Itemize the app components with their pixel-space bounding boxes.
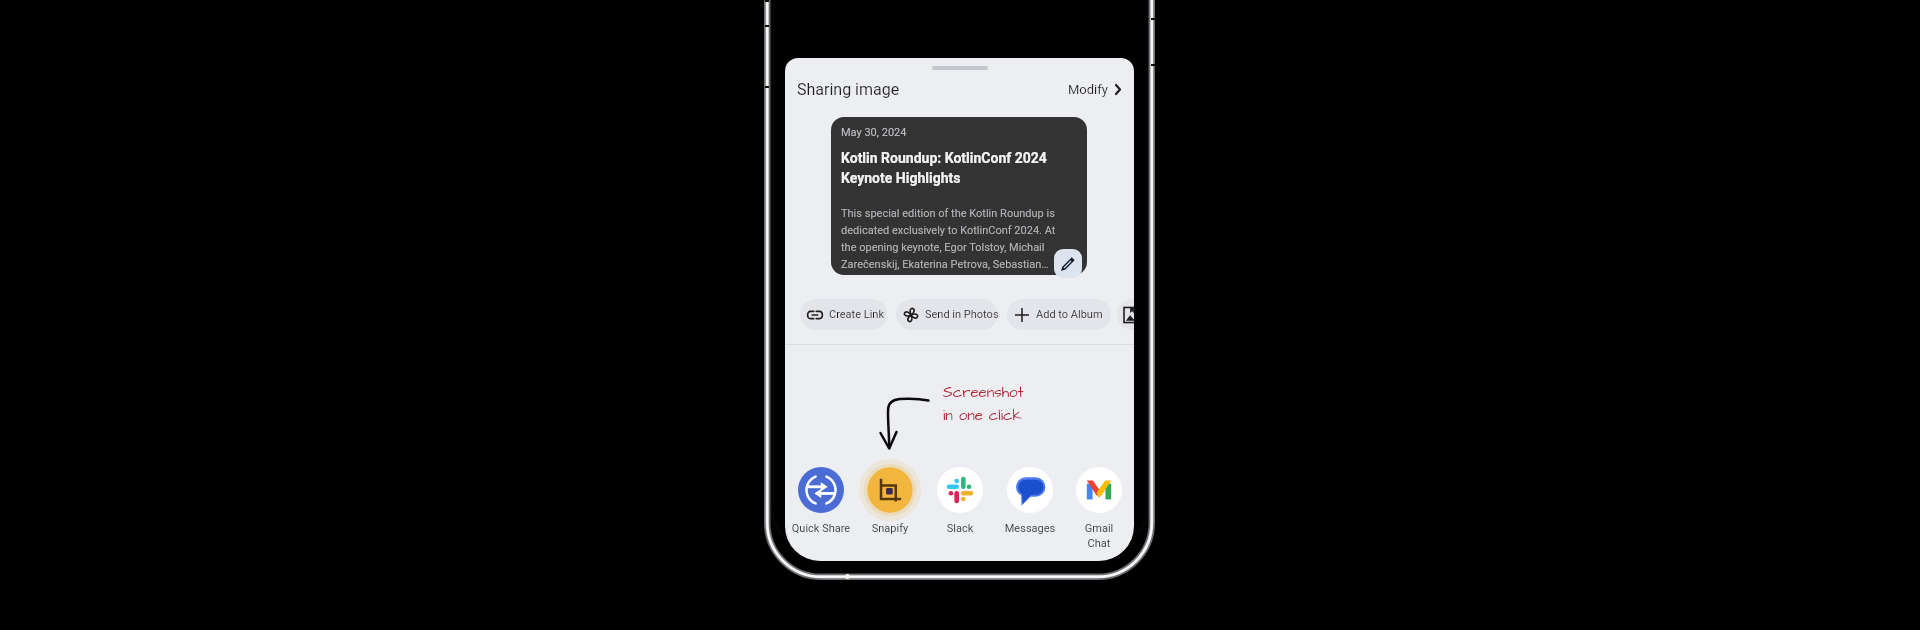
button[interactable]: Snapify	[857, 459, 923, 549]
button[interactable]: Add to Album	[1007, 299, 1111, 330]
staticText: Quick Share	[788, 522, 854, 535]
staticText: in one click	[943, 405, 1022, 426]
staticText: Create Link	[829, 308, 885, 321]
button[interactable]: Edit	[1054, 249, 1082, 278]
staticText: Slack	[927, 522, 993, 535]
staticText: Snapify	[857, 522, 923, 535]
button[interactable]: Modify	[1062, 77, 1127, 101]
button[interactable]: Save image	[1117, 299, 1134, 330]
staticText: Sharing image	[797, 80, 900, 99]
staticText: Kotlin Roundup: KotlinConf 2024 Keynote …	[841, 150, 1047, 186]
staticText: Modify	[1068, 82, 1108, 97]
staticText: May 30, 2024	[841, 126, 907, 139]
button[interactable]: Messages	[997, 459, 1063, 549]
button[interactable]: Slack	[927, 459, 993, 549]
staticText: Send in Photos	[925, 308, 998, 321]
staticText: Screenshot	[943, 382, 1024, 403]
staticText: Gmail Chat	[1066, 522, 1132, 550]
button[interactable]: Create Link	[800, 299, 887, 330]
staticText: This special edition of the Kotlin Round…	[841, 207, 1067, 271]
staticText: Messages	[997, 522, 1063, 535]
staticText: Add to Album	[1036, 308, 1103, 321]
button[interactable]: Quick Share	[788, 459, 854, 549]
button[interactable]: Send in Photos	[896, 299, 998, 330]
button[interactable]: Gmail Chat	[1066, 459, 1132, 549]
